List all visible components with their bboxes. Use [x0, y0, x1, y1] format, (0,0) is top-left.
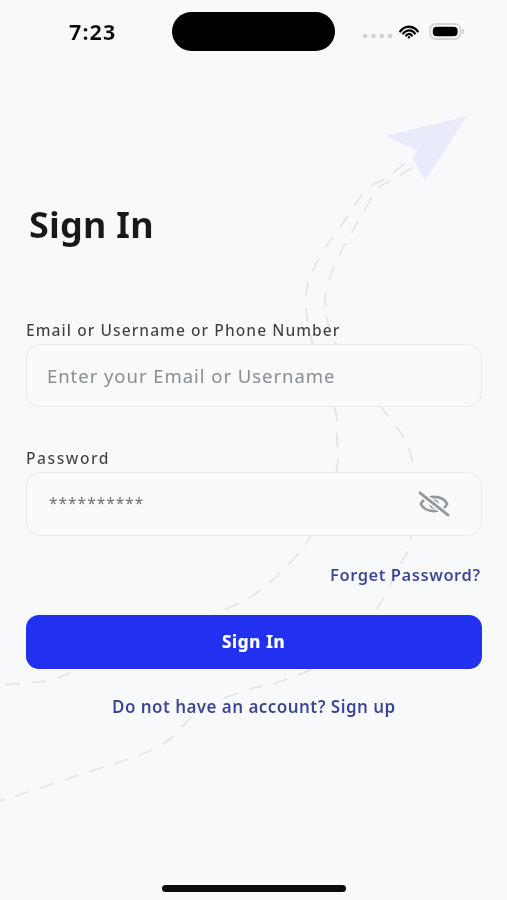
button[interactable]: Forget Password? — [326, 557, 485, 591]
staticText: Password — [26, 447, 111, 468]
button[interactable]: ********** — [26, 472, 482, 536]
staticText: Forget Password? — [330, 563, 481, 585]
staticText: Enter your Email or Username — [47, 363, 336, 388]
staticText: ********** — [49, 492, 145, 513]
staticText: Do not have an account? Sign up — [112, 695, 396, 718]
button[interactable]: Show password — [415, 485, 453, 523]
button[interactable]: Do not have an account? Sign up — [108, 689, 400, 724]
staticText: Email or Username or Phone Number — [26, 319, 341, 340]
button[interactable]: Sign In — [26, 615, 482, 669]
button[interactable]: Enter your Email or Username — [26, 344, 482, 407]
staticText: 7:23 — [69, 17, 117, 46]
staticText: Sign In — [29, 200, 154, 249]
staticText: Sign In — [222, 630, 286, 653]
